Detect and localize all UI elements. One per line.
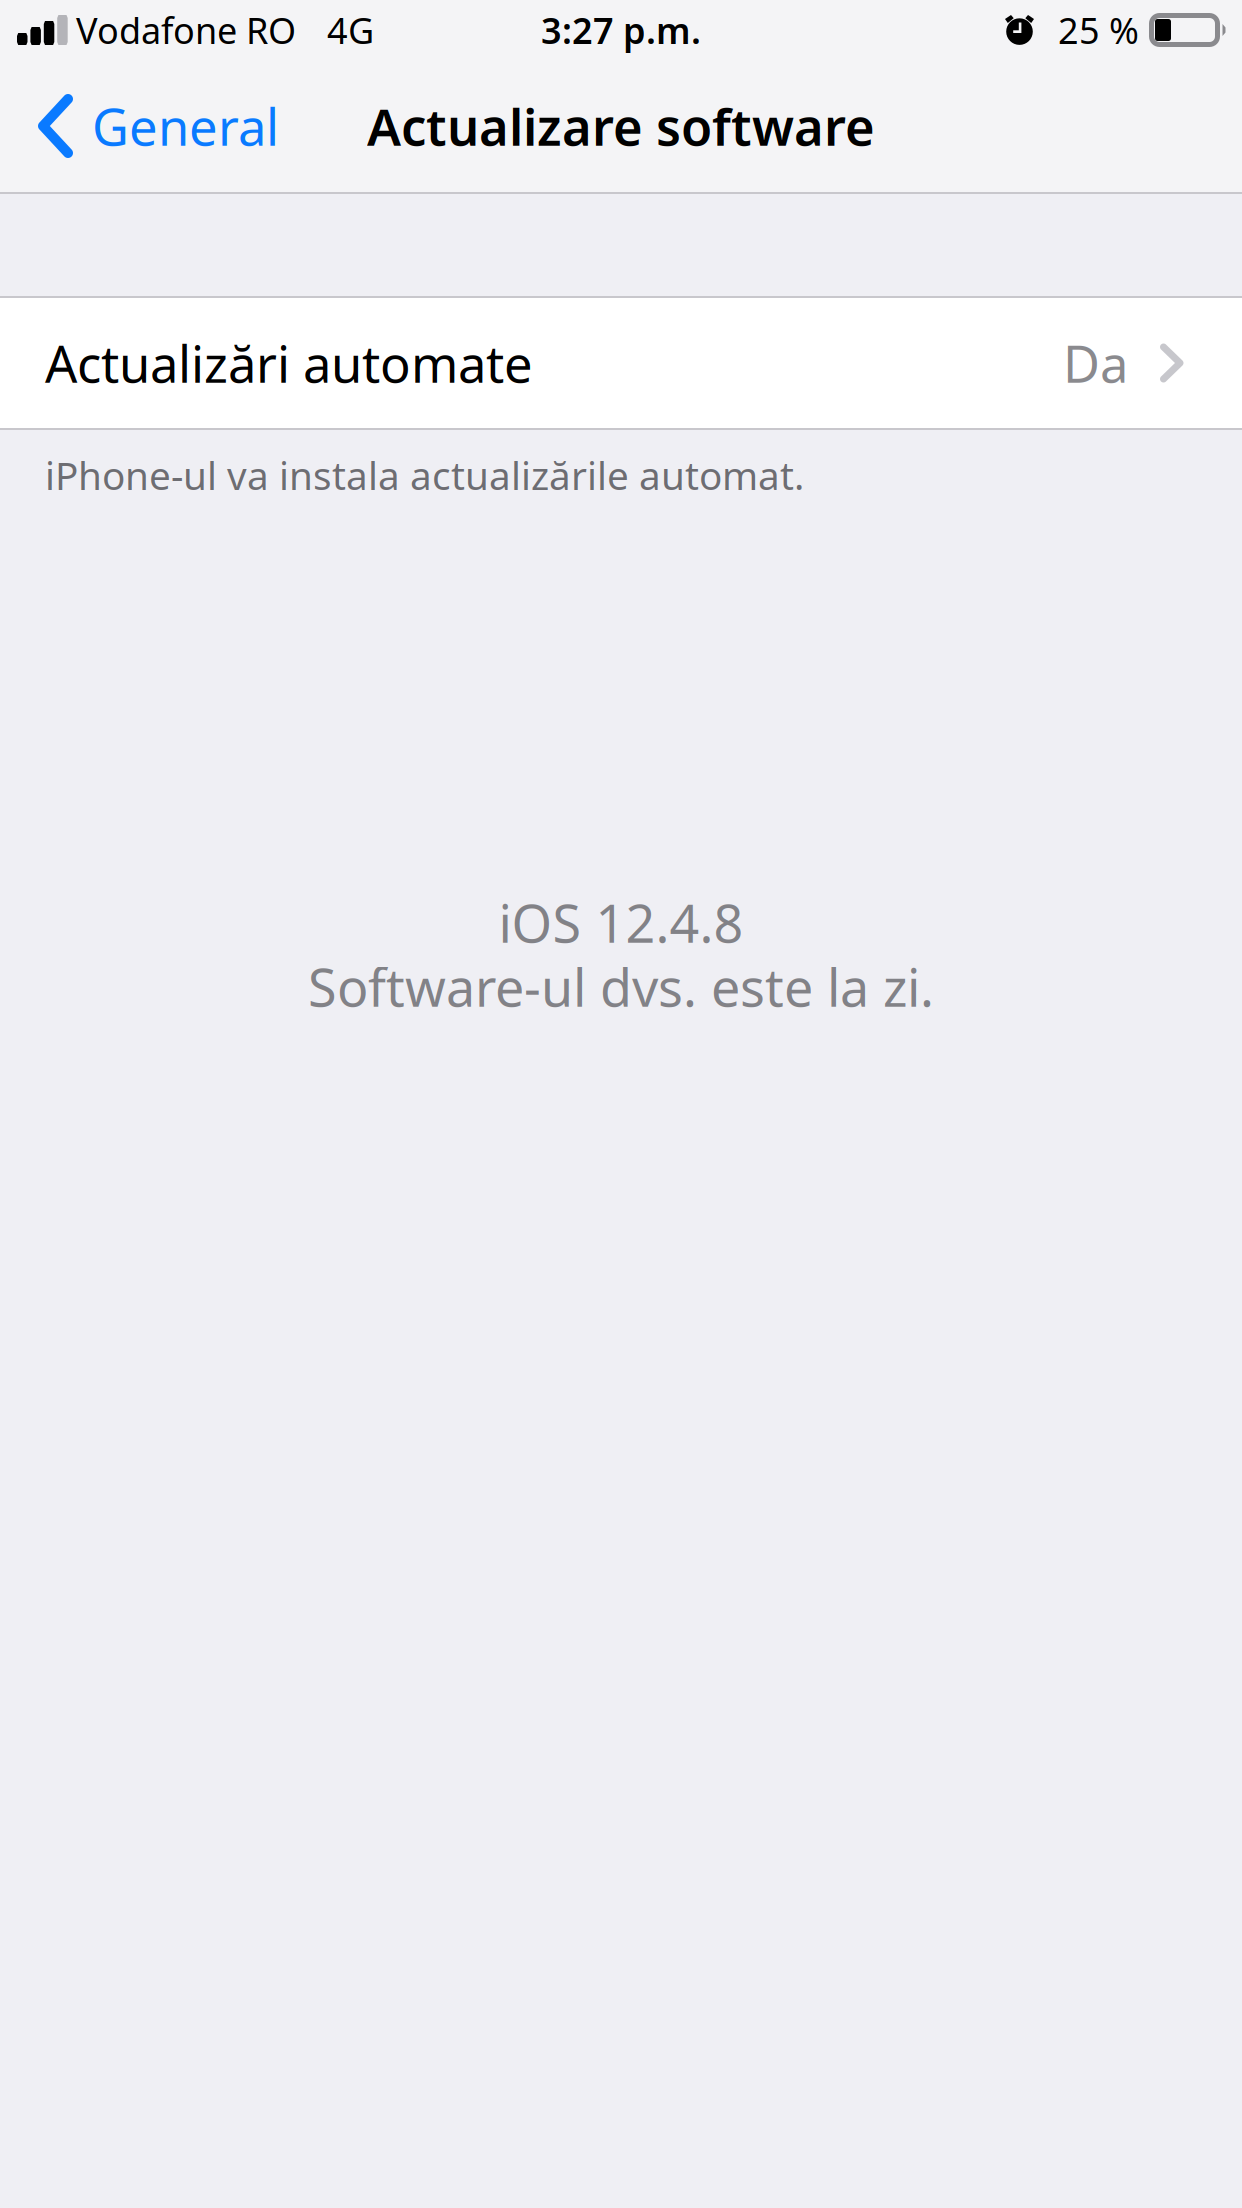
staticText: General: [92, 92, 279, 160]
staticText: Da: [1063, 329, 1128, 397]
button[interactable]: Back to General: [0, 60, 299, 192]
staticText: Software-ul dvs. este la zi.: [308, 952, 934, 1021]
staticText: Vodafone RO: [76, 6, 296, 54]
staticText: Actualizare software: [367, 92, 875, 160]
staticText: iOS 12.4.8: [498, 888, 743, 957]
staticText: iPhone-ul va instala actualizările autom…: [45, 449, 804, 501]
button[interactable]: Actualizări automate: [0, 298, 1242, 428]
staticText: Actualizări automate: [45, 329, 533, 397]
staticText: 25 %: [1058, 6, 1139, 54]
staticText: 4G: [327, 6, 374, 54]
staticText: 3:27 p.m.: [541, 6, 701, 54]
